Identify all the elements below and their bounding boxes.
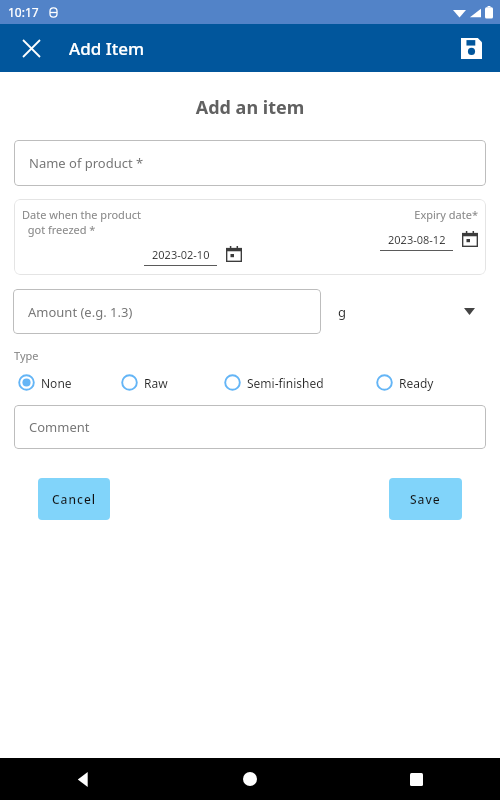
staticText: 2023-08-12 — [388, 232, 446, 247]
button[interactable]: Recent apps — [333, 758, 500, 800]
button[interactable]: Save — [389, 478, 462, 520]
staticText: 2023-02-10 — [152, 247, 210, 262]
staticText: Ready — [399, 375, 434, 391]
button[interactable]: Cancel — [38, 478, 110, 520]
staticText: 10:17 — [8, 4, 39, 20]
button[interactable]: Date when the product got freezed * — [22, 207, 242, 266]
staticText: Semi-finished — [247, 375, 324, 391]
staticText: Date when the product got freezed * — [22, 207, 242, 237]
button[interactable]: None — [18, 372, 121, 393]
button[interactable]: Close — [14, 31, 48, 65]
staticText: Raw — [144, 375, 168, 391]
staticText: Type — [14, 348, 39, 363]
button[interactable]: Comment — [14, 405, 486, 449]
button[interactable]: Name of product * — [14, 140, 486, 186]
staticText: Amount (e.g. 1.3) — [28, 303, 133, 321]
staticText: Expiry date* — [258, 207, 478, 222]
staticText: Save — [410, 491, 441, 507]
button[interactable]: Amount (e.g. 1.3) — [13, 289, 321, 334]
staticText: Add an item — [0, 95, 500, 120]
button[interactable]: g — [338, 289, 487, 334]
button[interactable]: Semi-finished — [224, 372, 376, 393]
button[interactable]: Home — [166, 758, 333, 800]
button[interactable]: Back — [0, 758, 166, 800]
staticText: Add Item — [69, 37, 145, 60]
button[interactable]: Ready — [376, 372, 434, 393]
staticText: Cancel — [52, 491, 97, 507]
button[interactable]: Save — [454, 31, 488, 65]
staticText: None — [41, 375, 72, 391]
button[interactable]: Raw — [121, 372, 224, 393]
button[interactable]: Expiry date* — [258, 207, 478, 251]
staticText: Name of product * — [29, 154, 144, 172]
staticText: g — [338, 303, 346, 321]
staticText: Comment — [29, 418, 90, 436]
